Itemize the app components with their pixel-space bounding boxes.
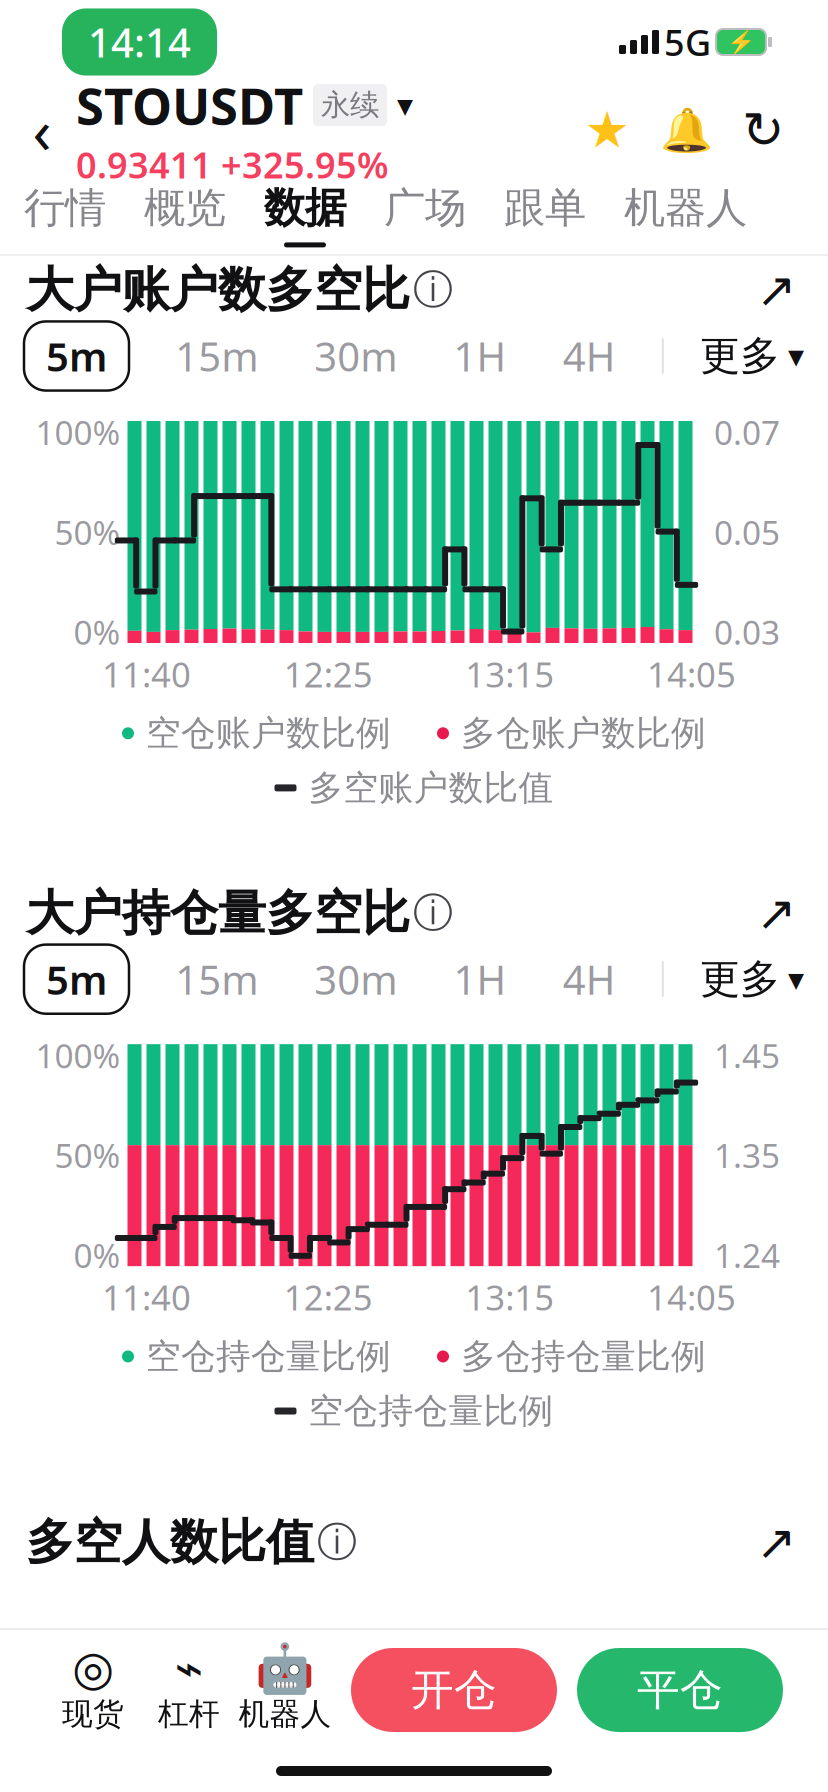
staticText: 🤖 (255, 1641, 315, 1695)
button[interactable]: 4H (553, 321, 626, 390)
staticText: 概览 (144, 183, 226, 233)
button[interactable]: 5m (24, 321, 129, 390)
staticText: 1.35 (714, 1133, 780, 1177)
staticText: 14:05 (647, 651, 736, 697)
button[interactable]: ⌁ (141, 1647, 237, 1733)
staticText: 空仓持仓量比例 (308, 1390, 553, 1432)
button[interactable]: 概览 (144, 177, 226, 253)
button[interactable]: 分享 (750, 887, 802, 939)
staticText: 14:05 (647, 1274, 736, 1320)
staticText: ↗ (756, 263, 796, 317)
button[interactable]: 更多 (700, 955, 804, 1004)
button[interactable]: 说明 (314, 1519, 360, 1565)
staticText: 5m (46, 953, 107, 1006)
button[interactable]: 返回 (14, 95, 70, 165)
staticText: 5m (46, 329, 107, 382)
staticText: 0% (73, 1233, 120, 1277)
button[interactable]: ◎ (45, 1647, 141, 1733)
staticText: ◎ (72, 1641, 114, 1695)
staticText: 更多 (700, 331, 780, 380)
staticText: ▾ (788, 961, 804, 997)
staticText: ‹ (32, 89, 51, 171)
staticText: 多空人数比值 (26, 1513, 314, 1572)
staticText: ★ (584, 101, 629, 159)
staticText: ⌁ (174, 1641, 203, 1695)
staticText: 空仓账户数比例 (146, 712, 391, 755)
staticText: 4H (563, 953, 616, 1006)
button[interactable]: 行情 (24, 177, 106, 253)
staticText: 100% (35, 1033, 120, 1077)
staticText: 50% (54, 1133, 120, 1177)
staticText: 永续 (321, 87, 379, 123)
button[interactable]: 更多 (700, 331, 804, 380)
staticText: 🔔 (659, 106, 712, 154)
staticText: 空仓持仓量比例 (146, 1335, 391, 1378)
staticText: 5G (664, 18, 711, 66)
button[interactable]: 开仓 (351, 1648, 557, 1732)
staticText: 大户账户数多空比 (26, 260, 410, 319)
staticText: 13:15 (465, 1274, 554, 1320)
staticText: 11:40 (102, 651, 191, 697)
staticText: ▾ (788, 338, 804, 374)
button[interactable]: 30m (304, 945, 407, 1014)
staticText: 多空账户数比值 (308, 767, 553, 809)
button[interactable]: 说明 (410, 890, 456, 936)
staticText: 30m (314, 329, 397, 382)
staticText: 广场 (384, 183, 466, 233)
button[interactable]: 跟单 (504, 177, 586, 253)
button[interactable]: 广场 (384, 177, 466, 253)
staticText: 1H (453, 953, 506, 1006)
button[interactable]: 分享 (750, 264, 802, 316)
staticText: 更多 (700, 955, 780, 1004)
button[interactable]: 价格提醒 (666, 104, 706, 156)
staticText: 1.24 (714, 1233, 780, 1277)
staticText: 行情 (24, 183, 106, 233)
button[interactable]: 30m (304, 321, 407, 390)
staticText: ↗ (756, 1515, 796, 1570)
staticText: 杠杆 (158, 1695, 220, 1733)
staticText: 0.07 (714, 410, 780, 454)
staticText: 现货 (62, 1695, 124, 1733)
staticText: ↻ (742, 101, 784, 159)
staticText: ⚡ (727, 29, 755, 55)
button[interactable]: 分享 (742, 104, 784, 156)
staticText: STOUSDT (76, 71, 303, 139)
button[interactable]: 1H (443, 945, 516, 1014)
staticText: 12:25 (284, 651, 373, 697)
staticText: 0.03 (714, 610, 780, 654)
button[interactable]: 说明 (410, 267, 456, 313)
staticText: ▾ (397, 87, 413, 123)
staticText: 多仓持仓量比例 (461, 1335, 706, 1378)
button[interactable]: 数据 (264, 177, 346, 253)
staticText: ⓘ (317, 1518, 357, 1567)
staticText: 0.05 (714, 510, 780, 554)
staticText: 50% (54, 510, 120, 554)
staticText: 1H (453, 329, 506, 382)
staticText: 30m (314, 953, 397, 1006)
staticText: 数据 (264, 183, 346, 233)
staticText: 15m (175, 329, 258, 382)
button[interactable]: 15m (165, 945, 268, 1014)
staticText: 0% (73, 610, 120, 654)
button[interactable]: 5m (24, 945, 129, 1014)
staticText: 13:15 (465, 651, 554, 697)
staticText: 跟单 (504, 183, 586, 233)
staticText: 4H (563, 329, 616, 382)
staticText: 大户持仓量多空比 (26, 884, 410, 943)
button[interactable]: 平仓 (577, 1648, 783, 1732)
button[interactable]: 🤖 (237, 1647, 333, 1733)
button[interactable]: 收藏 (584, 104, 630, 156)
staticText: 1.45 (714, 1033, 780, 1077)
button[interactable]: 分享 (750, 1516, 802, 1568)
button[interactable]: 1H (443, 321, 516, 390)
staticText: 平仓 (637, 1664, 723, 1716)
staticText: 开仓 (411, 1664, 497, 1716)
staticText: 12:25 (284, 1274, 373, 1320)
staticText: 14:14 (88, 15, 191, 68)
button[interactable]: 15m (165, 321, 268, 390)
staticText: 0.93411 +325.95% (76, 141, 389, 188)
staticText: 多仓账户数比例 (461, 712, 706, 755)
button[interactable]: 4H (553, 945, 626, 1014)
staticText: 机器人 (238, 1695, 331, 1733)
button[interactable]: 机器人 (624, 177, 747, 253)
